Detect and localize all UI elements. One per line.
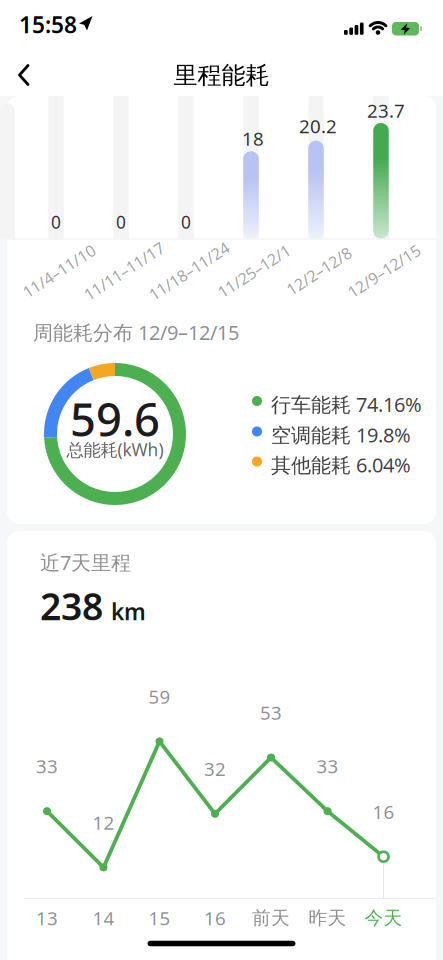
button[interactable]: Back <box>8 55 48 95</box>
staticText: 11/11–11/17 <box>78 260 170 282</box>
staticText: km <box>111 596 146 626</box>
staticText: 行车能耗 74.16% <box>271 391 422 418</box>
staticText: 15 <box>148 906 170 930</box>
staticText: 11/4–11/10 <box>17 260 100 282</box>
staticText: 0 <box>51 210 61 233</box>
staticText: 里程能耗 <box>173 61 269 90</box>
staticText: 周能耗分布 12/9–12/15 <box>33 319 239 346</box>
staticText: 13 <box>36 906 58 930</box>
staticText: 33 <box>36 754 58 778</box>
staticText: 12/2–12/8 <box>282 260 356 282</box>
staticText: 15:58 <box>19 9 77 39</box>
staticText: 14 <box>92 906 114 930</box>
staticText: 18 <box>242 126 264 151</box>
staticText: 32 <box>204 756 226 781</box>
staticText: 16 <box>204 906 226 930</box>
staticText: 0 <box>116 210 126 233</box>
staticText: 11/25–12/1 <box>212 260 295 282</box>
staticText: 59 <box>148 684 170 709</box>
staticText: 11/18–11/24 <box>143 260 235 282</box>
staticText: 33 <box>316 754 338 778</box>
staticText: 238 <box>40 581 103 631</box>
staticText: 20.2 <box>299 114 337 138</box>
staticText: 昨天 <box>308 906 346 929</box>
staticText: 12 <box>92 810 114 835</box>
staticText: 16 <box>372 799 394 824</box>
staticText: 今天 <box>364 906 402 929</box>
staticText: 总能耗(kWh) <box>66 438 163 461</box>
staticText: 空调能耗 19.8% <box>271 421 411 448</box>
staticText: 53 <box>260 700 282 725</box>
staticText: 59.6 <box>70 389 160 449</box>
staticText: 23.7 <box>367 98 405 123</box>
staticText: 其他能耗 6.04% <box>271 451 411 478</box>
staticText: 0 <box>181 210 191 233</box>
staticText: 12/9–12/15 <box>342 260 425 282</box>
staticText: 前天 <box>252 906 290 929</box>
staticText: 近7天里程 <box>40 549 131 576</box>
